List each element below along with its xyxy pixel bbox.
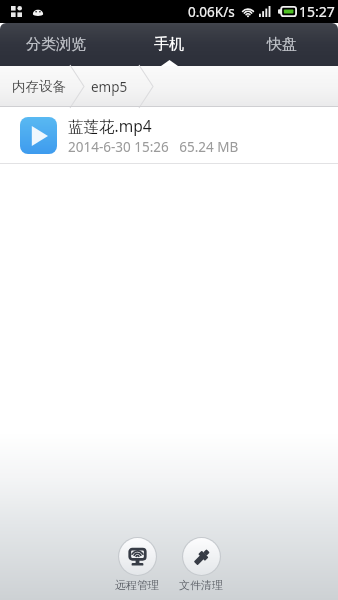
staticText: 分类浏览 (26, 35, 86, 54)
button[interactable]: emp5 (91, 78, 128, 96)
staticText: 0.06K/s (188, 3, 235, 21)
staticText: 文件清理 (179, 578, 223, 592)
staticText: 手机 (154, 35, 184, 54)
staticText: 快盘 (267, 35, 297, 54)
staticText: 远程管理 (115, 578, 159, 592)
button[interactable]: 内存设备 (12, 78, 66, 95)
button[interactable]: 快盘 (225, 23, 338, 64)
button[interactable]: Remote management (113, 537, 161, 592)
button[interactable]: 手机 (112, 23, 225, 64)
button[interactable]: 分类浏览 (0, 23, 112, 64)
button[interactable]: File cleanup (177, 537, 225, 592)
staticText: 蓝莲花.mp4 (68, 115, 152, 136)
staticText: 15:27 (299, 2, 335, 21)
staticText: 2014-6-30 15:26 65.24 MB (68, 138, 239, 156)
button[interactable]: 蓝莲花.mp4 (0, 107, 338, 163)
